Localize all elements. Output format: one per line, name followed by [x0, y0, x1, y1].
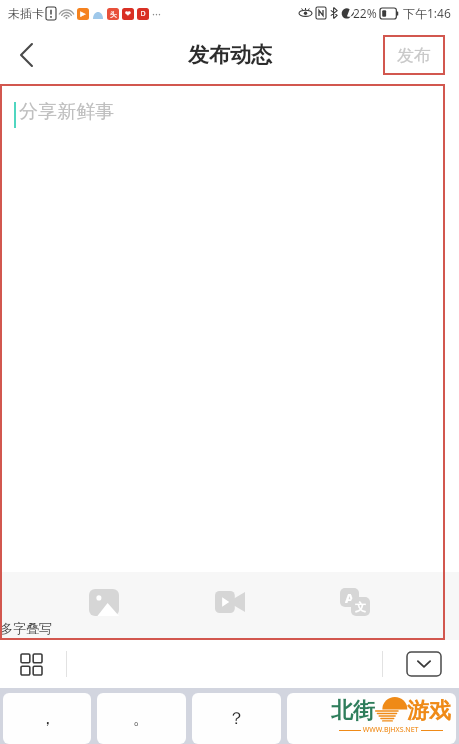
button[interactable]: Add video	[208, 580, 252, 624]
button[interactable]: 。	[97, 693, 186, 744]
button[interactable]: ？	[192, 693, 281, 744]
staticText: 头	[110, 10, 117, 19]
button[interactable]: ，	[3, 693, 91, 744]
staticText: 游戏	[407, 697, 451, 725]
button[interactable]	[287, 693, 456, 744]
staticText: 发布	[397, 45, 431, 66]
staticText: ？	[228, 708, 245, 729]
staticText: 发布动态	[188, 42, 272, 68]
staticText: 分享新鲜事	[19, 100, 114, 124]
button[interactable]: Hide keyboard	[407, 652, 441, 676]
staticText: 。	[133, 708, 150, 729]
staticText: 多字叠写	[0, 620, 52, 636]
button[interactable]: 发布	[383, 35, 445, 75]
staticText: ，	[39, 708, 56, 729]
button[interactable]: Add image	[82, 580, 126, 624]
staticText: A	[345, 589, 354, 607]
button[interactable]: Keyboard panel	[10, 643, 52, 685]
staticText: 22%	[353, 5, 377, 21]
staticText: 下午1:46	[403, 5, 451, 21]
staticText: D	[140, 9, 146, 19]
staticText: 未插卡	[8, 6, 44, 21]
staticText: ❤	[125, 10, 131, 18]
button[interactable]: Back	[0, 29, 52, 81]
staticText: WWW.BJHXS.NET	[361, 725, 421, 735]
staticText: ···	[152, 6, 161, 21]
staticText: 北街	[331, 697, 375, 725]
button[interactable]: Translate	[333, 580, 377, 624]
staticText: ▶	[80, 10, 86, 18]
staticText: 文	[355, 600, 366, 614]
